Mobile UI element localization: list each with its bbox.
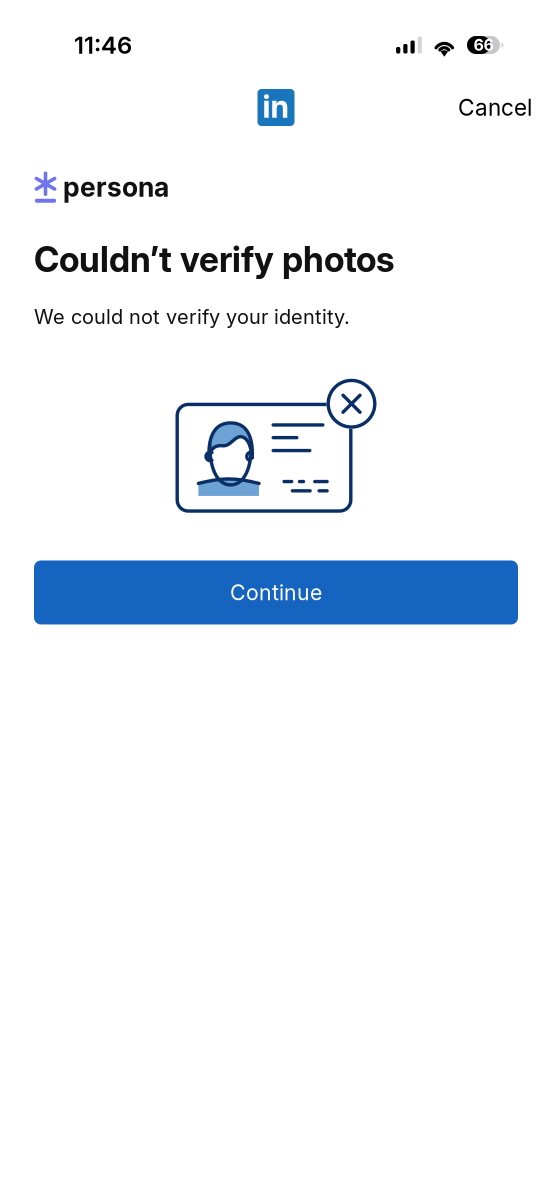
staticText: 66: [473, 36, 493, 54]
button[interactable]: Continue: [34, 560, 518, 624]
staticText: Cancel: [458, 94, 532, 121]
staticText: in: [262, 88, 289, 125]
staticText: Couldn’t verify photos: [34, 239, 394, 280]
staticText: persona: [63, 171, 169, 203]
button[interactable]: Cancel: [448, 86, 542, 129]
staticText: 11:46: [74, 31, 132, 59]
staticText: Continue: [230, 580, 322, 605]
staticText: We could not verify your identity.: [34, 305, 350, 328]
